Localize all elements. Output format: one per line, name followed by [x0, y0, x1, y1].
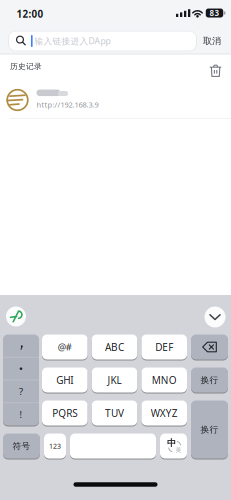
staticText: MNO [152, 373, 177, 387]
staticText: TUV [105, 406, 124, 420]
button[interactable]: DEF [141, 334, 187, 360]
button[interactable]: 空格 [70, 433, 156, 459]
button[interactable]: 取消 [197, 31, 227, 51]
staticText: @# [58, 341, 72, 353]
staticText: 123 [49, 441, 61, 451]
button[interactable]: 收起键盘 [204, 306, 225, 327]
button[interactable]: PQRS [42, 400, 88, 426]
button[interactable]: TUV [92, 400, 137, 426]
button[interactable]: ABC [92, 334, 137, 360]
staticText: ? [19, 385, 23, 398]
button[interactable]: MNO [141, 367, 187, 393]
staticText: 英 [175, 446, 181, 454]
button[interactable]: 输入法 [6, 306, 26, 326]
staticText: http://192.168.3.9 [36, 99, 98, 110]
staticText: JKL [107, 373, 121, 387]
button[interactable]: WXYZ [141, 400, 187, 426]
staticText: 取消 [203, 35, 221, 47]
button[interactable]: @# [42, 334, 88, 360]
button[interactable]: 换行 [191, 400, 228, 459]
staticText: 中 [167, 437, 176, 449]
staticText: ! [19, 408, 22, 421]
button[interactable]: http://192.168.3.9 [0, 80, 231, 120]
staticText: WXYZ [151, 406, 178, 420]
staticText: 输入链接进入DApp [35, 35, 111, 47]
button[interactable]: 删除 [191, 334, 228, 360]
button[interactable]: 换行 [191, 367, 228, 393]
button[interactable]: 中英文切换 [160, 433, 187, 459]
staticText: 12:00 [16, 7, 43, 21]
staticText: PQRS [52, 406, 77, 420]
staticText: ABC [105, 340, 124, 354]
button[interactable]: 标点符号 [3, 334, 39, 426]
button[interactable]: 清除历史记录 [0, 0, 231, 500]
button[interactable]: 符号 [3, 433, 40, 459]
staticText: 83 [209, 8, 219, 18]
staticText: 符号 [12, 440, 30, 451]
button[interactable]: 123 [44, 433, 66, 459]
button[interactable]: GHI [42, 367, 88, 393]
staticText: 换行 [200, 374, 218, 385]
button[interactable]: JKL [92, 367, 137, 393]
staticText: GHI [56, 373, 73, 387]
staticText: DEF [155, 340, 173, 354]
staticText: 换行 [200, 424, 218, 435]
button[interactable]: 输入链接进入DApp [8, 30, 197, 51]
staticText: 历史记录 [10, 62, 42, 71]
